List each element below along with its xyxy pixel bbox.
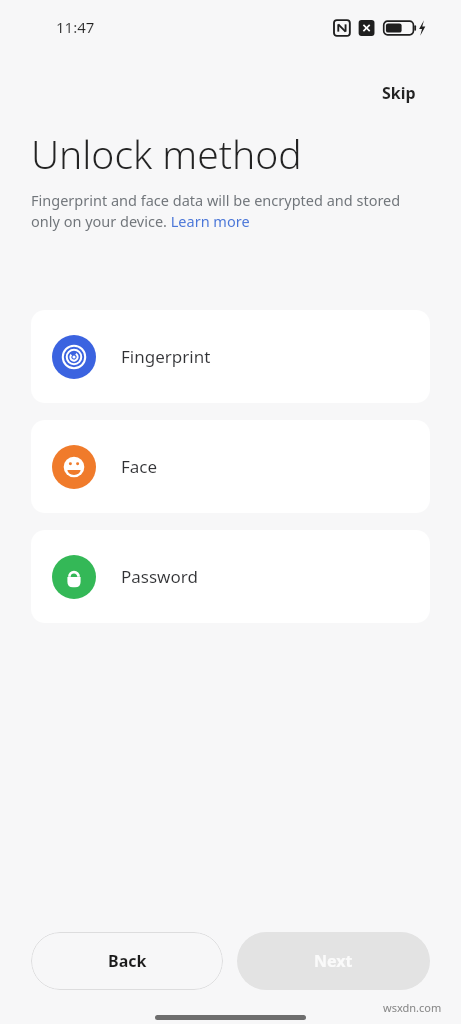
staticText: wsxdn.com bbox=[383, 1000, 442, 1015]
staticText: Next bbox=[314, 950, 353, 972]
staticText: Password bbox=[121, 565, 198, 588]
button[interactable]: Password bbox=[31, 530, 430, 623]
staticText: Unlock method bbox=[31, 127, 302, 180]
staticText: 11:47 bbox=[56, 17, 95, 37]
staticText: Face bbox=[121, 455, 158, 478]
staticText: Skip bbox=[382, 82, 416, 104]
button[interactable]: Next bbox=[237, 932, 430, 990]
button[interactable]: Fingerprint bbox=[31, 310, 430, 403]
staticText: Back bbox=[108, 950, 147, 972]
staticText: Fingerprint and face data will be encryp… bbox=[31, 190, 421, 232]
staticText: Fingerprint bbox=[121, 345, 211, 368]
button[interactable]: Back bbox=[31, 932, 223, 990]
button[interactable]: Skip bbox=[374, 76, 424, 110]
button[interactable]: Face bbox=[31, 420, 430, 513]
